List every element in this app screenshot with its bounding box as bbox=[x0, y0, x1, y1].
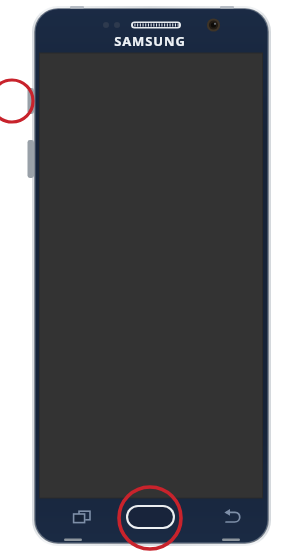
staticText: SAMSUNG bbox=[114, 32, 186, 48]
button[interactable]: Recent apps bbox=[68, 505, 94, 529]
button[interactable]: SAMSUNG brand logo bbox=[112, 32, 188, 48]
button[interactable]: Volume buttons bbox=[24, 138, 38, 180]
button[interactable]: SAMSUNG brand logo bbox=[0, 0, 300, 560]
button[interactable]: Power button bbox=[24, 85, 38, 117]
button[interactable]: Home button bbox=[120, 502, 180, 532]
button[interactable]: Back bbox=[221, 505, 247, 529]
